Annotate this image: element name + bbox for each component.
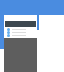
button[interactable] [4,34,37,37]
button[interactable] [4,28,37,31]
button[interactable] [4,31,37,34]
